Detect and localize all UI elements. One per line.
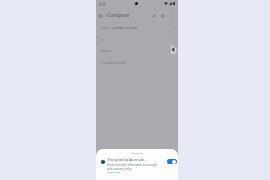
button[interactable]: Send bbox=[159, 12, 167, 20]
button[interactable]: Toggle encryption bbox=[167, 159, 177, 164]
staticText: xxx@gmail.com bbox=[111, 25, 138, 30]
staticText: Encrypted by Azure Lab... bbox=[108, 157, 147, 161]
staticText: Protect sensitive information and comply… bbox=[107, 163, 157, 171]
staticText: From bbox=[100, 25, 109, 30]
staticText: Subject bbox=[100, 48, 113, 53]
button[interactable]: More options bbox=[168, 12, 176, 20]
staticText: To bbox=[100, 37, 104, 42]
staticText: Compose email bbox=[100, 60, 127, 65]
button[interactable]: Attach file bbox=[150, 12, 158, 20]
button[interactable]: Learn more bbox=[107, 170, 120, 173]
button[interactable]: Back bbox=[96, 11, 105, 20]
staticText: Compose bbox=[107, 12, 130, 19]
button[interactable]: From bbox=[96, 21, 178, 33]
button[interactable]: Subject bbox=[96, 44, 178, 56]
staticText: 9:30 bbox=[99, 2, 106, 7]
